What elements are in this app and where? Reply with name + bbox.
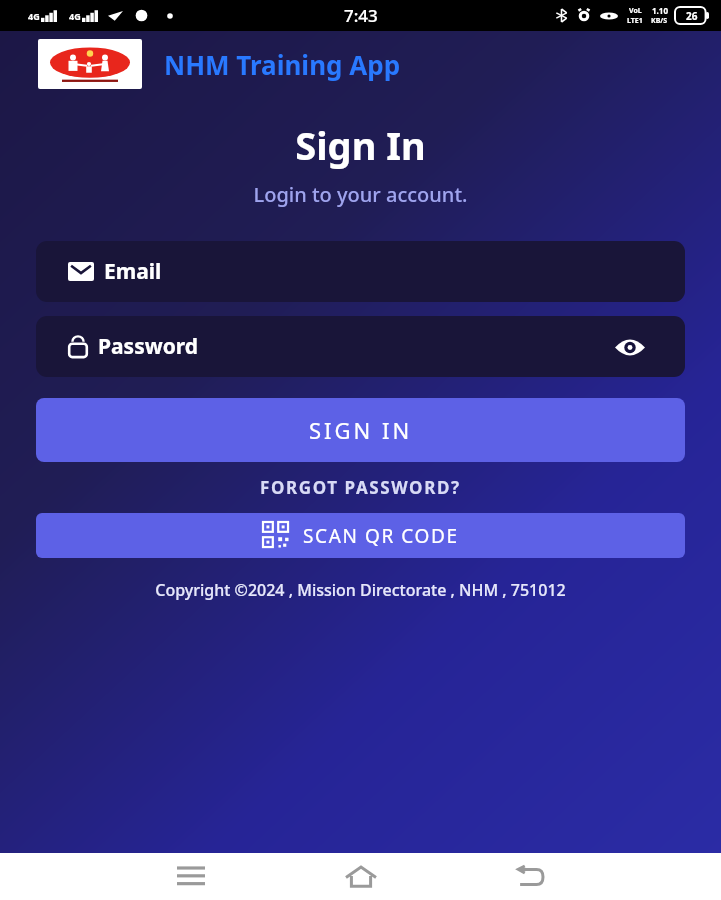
button[interactable]: Password xyxy=(36,316,685,377)
staticText: Email xyxy=(104,257,162,286)
staticText: LTE1 xyxy=(627,16,643,26)
staticText: 7:43 xyxy=(344,4,378,27)
staticText: VoL xyxy=(629,6,642,16)
button[interactable]: SIGN IN xyxy=(36,398,685,462)
staticText: Copyright ©2024 , Mission Directorate , … xyxy=(0,579,721,601)
button[interactable]: Recent apps xyxy=(168,854,214,900)
staticText: NHM Training App xyxy=(164,47,401,82)
staticText: KB/S xyxy=(651,16,668,26)
staticText: 1.10 xyxy=(652,5,668,16)
button[interactable]: SCAN QR CODE xyxy=(36,513,685,558)
staticText: SCAN QR CODE xyxy=(303,523,459,549)
staticText: Sign In xyxy=(0,119,721,171)
button[interactable]: Back xyxy=(507,854,553,900)
staticText: 4G xyxy=(28,10,40,22)
staticText: 4G xyxy=(69,10,81,22)
staticText: FORGOT PASSWORD? xyxy=(260,476,461,499)
button[interactable]: Home xyxy=(338,854,384,900)
staticText: SIGN IN xyxy=(309,415,413,445)
button[interactable]: Email xyxy=(36,241,685,302)
button[interactable]: FORGOT PASSWORD? xyxy=(0,476,721,499)
button[interactable]: Show password xyxy=(613,330,647,364)
button[interactable]: NHM logo xyxy=(38,39,142,89)
staticText: Login to your account. xyxy=(0,181,721,208)
staticText: 26 xyxy=(686,9,698,23)
staticText: Password xyxy=(98,332,199,361)
